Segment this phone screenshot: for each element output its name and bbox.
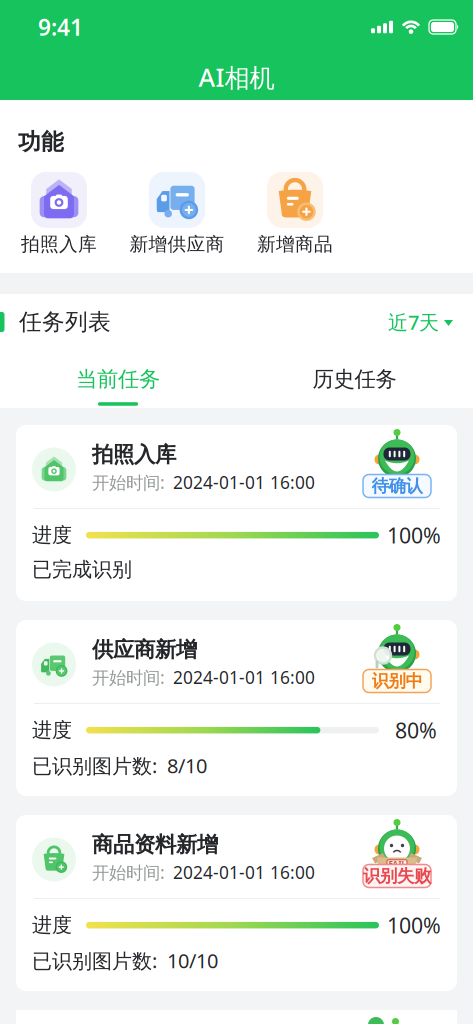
staticText: 待确认 [371, 475, 422, 497]
button[interactable]: 供应商新增 [16, 620, 457, 796]
button[interactable]: 近7天 [388, 309, 453, 335]
staticText: 新增商品 [257, 233, 333, 256]
staticText: 开始时间: [92, 666, 165, 689]
staticText: 近7天 [388, 309, 439, 335]
staticText: 100% [387, 911, 441, 939]
staticText: 历史任务 [312, 366, 396, 392]
staticText: 已识别图片数: 8/10 [32, 752, 207, 779]
staticText: 当前任务 [76, 366, 160, 392]
staticText: AI相机 [198, 60, 274, 94]
staticText: 进度 [32, 718, 72, 742]
staticText: 商品资料新增 [92, 831, 218, 858]
staticText: 进度 [32, 913, 72, 937]
staticText: 新增供应商 [129, 233, 224, 256]
button[interactable]: 新增供应商 [129, 172, 224, 256]
staticText: 进度 [32, 523, 72, 547]
staticText: 供应商新增 [92, 636, 197, 663]
staticText: 2024-01-01 16:00 [173, 471, 315, 494]
staticText: 9:41 [38, 12, 83, 42]
staticText: 识别失败 [363, 865, 431, 887]
staticText: 2024-01-01 16:00 [173, 861, 315, 884]
staticText: 识别中 [371, 670, 422, 692]
button[interactable]: 历史任务 [312, 366, 396, 406]
staticText: 功能 [18, 128, 64, 156]
button[interactable]: 拍照入库 [16, 425, 457, 601]
staticText: 拍照入库 [21, 233, 97, 256]
staticText: 2024-01-01 16:00 [173, 666, 315, 689]
button[interactable]: 任务卡片 [16, 1010, 457, 1024]
staticText: 已完成识别 [32, 557, 132, 582]
staticText: 开始时间: [92, 471, 165, 494]
staticText: 100% [387, 521, 441, 549]
staticText: 拍照入库 [92, 441, 176, 468]
staticText: 任务列表 [19, 308, 111, 336]
button[interactable]: 当前任务 [76, 366, 160, 406]
staticText: 开始时间: [92, 861, 165, 884]
button[interactable]: 商品资料新增 [16, 815, 457, 991]
staticText: 已识别图片数: 10/10 [32, 947, 218, 974]
staticText: 80% [395, 716, 437, 744]
button[interactable]: 拍照入库 [21, 172, 97, 256]
staticText: FAIL [388, 859, 405, 869]
button[interactable]: 新增商品 [257, 172, 333, 256]
